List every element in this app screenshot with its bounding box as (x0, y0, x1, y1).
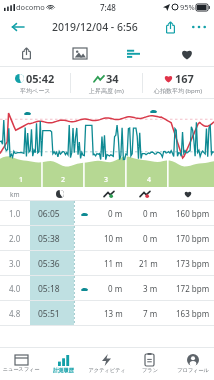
staticText: 0 m (143, 233, 158, 244)
staticText: 7:48 (100, 2, 116, 13)
staticText: 3 (104, 175, 109, 185)
staticText: 05:51 (38, 308, 60, 320)
staticText: 167 (175, 71, 194, 86)
staticText: 160 bpm (176, 208, 210, 219)
staticText: 2 (61, 175, 66, 185)
staticText: 7 m (143, 308, 158, 319)
button[interactable]: 3.0 (0, 251, 214, 276)
staticText: 2.0 (9, 233, 21, 244)
staticText: 0 m (108, 208, 123, 219)
button[interactable]: Favorite (160, 40, 214, 67)
staticText: 1.0 (9, 208, 21, 219)
staticText: 170 bpm (176, 233, 210, 244)
staticText: km (10, 190, 20, 199)
button[interactable]: 05:42 (0, 67, 70, 99)
button[interactable]: プロフィール (171, 348, 214, 380)
button[interactable]: Photos (53, 40, 106, 67)
staticText: 06:05 (38, 208, 60, 220)
staticText: 13 m (104, 308, 123, 319)
button[interactable]: 167 (143, 67, 214, 99)
staticText: 34 (106, 71, 119, 86)
staticText: 173 bpm (176, 258, 210, 269)
staticText: 95% (180, 2, 195, 12)
staticText: 10 m (104, 233, 123, 244)
button[interactable]: Share (156, 14, 184, 40)
staticText: 4 (147, 175, 152, 185)
staticText: 3.0 (9, 258, 21, 269)
staticText: 4.0 (9, 283, 21, 294)
staticText: 2019/12/04 - 6:56 (52, 20, 138, 34)
button[interactable]: 34 (71, 67, 142, 99)
staticText: 05:18 (38, 283, 60, 295)
button[interactable]: Back (0, 14, 34, 40)
staticText: 1 (19, 175, 24, 185)
staticText: 0 m (143, 208, 158, 219)
staticText: 05:36 (38, 258, 60, 270)
staticText: アクティビティ (88, 367, 126, 374)
staticText: docomo (16, 2, 45, 12)
staticText: 0 m (108, 283, 123, 294)
staticText: 3 m (143, 283, 158, 294)
staticText: 11 m (104, 258, 123, 269)
staticText: 計測履歴 (53, 367, 74, 374)
button[interactable]: ニュースフィード (0, 348, 42, 380)
button[interactable]: 4.0 (0, 276, 214, 301)
button[interactable]: 4.8 (0, 301, 214, 326)
staticText: プラン (142, 367, 158, 374)
button[interactable]: Chart (106, 40, 160, 67)
staticText: 05:42 (26, 71, 55, 86)
staticText: 心拍数平均 (bpm) (154, 87, 203, 95)
staticText: 平均ペース (20, 87, 51, 95)
button[interactable]: 1.0 (0, 201, 214, 226)
button[interactable]: Export (0, 40, 53, 67)
staticText: プロフィール (177, 367, 209, 374)
button[interactable]: 計測履歴 (42, 348, 85, 380)
button[interactable]: プラン (128, 348, 171, 380)
button[interactable]: 2.0 (0, 226, 214, 251)
button[interactable]: More options (184, 14, 214, 40)
staticText: 172 bpm (176, 283, 210, 294)
staticText: 21 m (139, 258, 158, 269)
staticText: ニュースフィード (0, 366, 42, 373)
staticText: 05:38 (38, 233, 60, 245)
staticText: 上昇高度 (m) (89, 87, 124, 95)
staticText: 4.8 (9, 308, 21, 319)
staticText: 163 bpm (176, 308, 210, 319)
button[interactable]: アクティビティ (85, 348, 128, 380)
